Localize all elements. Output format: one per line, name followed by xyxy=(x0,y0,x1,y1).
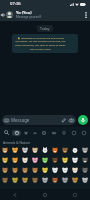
button[interactable]: Emoji category xyxy=(79,127,89,138)
button[interactable]: Emoji xyxy=(70,145,80,155)
button[interactable]: Emoji category xyxy=(69,127,79,138)
button[interactable]: Emoji category xyxy=(12,127,21,138)
button[interactable]: Emoji xyxy=(80,155,90,165)
button[interactable]: Emoji xyxy=(10,145,20,155)
staticText: 07:36 xyxy=(10,1,21,7)
button[interactable]: Emoji xyxy=(60,165,70,175)
button[interactable]: Emoji xyxy=(20,145,30,155)
button[interactable]: Emoji xyxy=(70,165,80,175)
button[interactable]: More options xyxy=(82,8,90,21)
button[interactable]: Emoji xyxy=(80,145,90,155)
button[interactable]: Emoji xyxy=(10,165,20,175)
button[interactable]: Emoji xyxy=(30,145,40,155)
button[interactable]: Emoji xyxy=(50,155,60,165)
button[interactable]: Emoji xyxy=(40,155,50,165)
button[interactable]: Message xyxy=(2,115,76,125)
button[interactable]: Emoji xyxy=(30,175,40,185)
button[interactable]: Emoji xyxy=(0,175,10,185)
button[interactable]: Emoji xyxy=(40,175,50,185)
button[interactable]: Emoji xyxy=(50,145,60,155)
button[interactable]: Voice message xyxy=(78,115,88,125)
button[interactable]: Emoji category xyxy=(49,127,59,138)
button[interactable]: Emoji xyxy=(30,165,40,175)
button[interactable]: Emoji category xyxy=(59,127,69,138)
button[interactable]: Recents xyxy=(60,189,90,200)
staticText: 🔒 Messages to yourself are end-to-end en… xyxy=(15,36,66,51)
button[interactable]: Search emoji xyxy=(0,127,12,138)
staticText: Today xyxy=(40,26,50,31)
button[interactable]: Emoji xyxy=(20,175,30,185)
button[interactable]: Emoji xyxy=(30,155,40,165)
button[interactable]: Emoji xyxy=(0,155,10,165)
button[interactable]: Emoji xyxy=(50,165,60,175)
button[interactable]: Emoji xyxy=(60,175,70,185)
button[interactable]: 🔒 Messages to yourself are end-to-end en… xyxy=(12,34,78,53)
button[interactable]: Emoji xyxy=(70,155,80,165)
button[interactable]: Emoji xyxy=(80,175,90,185)
button[interactable]: Emoji xyxy=(20,155,30,165)
button[interactable]: Emoji category xyxy=(39,127,49,138)
staticText: Animals & Nature xyxy=(3,140,31,144)
button[interactable]: Emoji category xyxy=(21,127,30,138)
button[interactable]: Emoji xyxy=(60,145,70,155)
button[interactable]: Emoji xyxy=(40,145,50,155)
staticText: Yo (You) xyxy=(16,10,32,15)
button[interactable]: Emoji xyxy=(80,165,90,175)
button[interactable]: Emoji xyxy=(60,155,70,165)
button[interactable]: Back xyxy=(0,8,6,21)
button[interactable]: Emoji xyxy=(10,175,20,185)
staticText: Message xyxy=(11,117,30,123)
button[interactable]: Emoji xyxy=(40,165,50,175)
staticText: Message yourself xyxy=(16,15,41,19)
button[interactable]: Emoji xyxy=(70,175,80,185)
button[interactable]: Emoji xyxy=(0,145,10,155)
button[interactable]: Emoji category xyxy=(30,127,39,138)
button[interactable]: Back xyxy=(0,189,30,200)
button[interactable]: Emoji xyxy=(20,165,30,175)
button[interactable]: Home xyxy=(30,189,60,200)
button[interactable]: Emoji xyxy=(0,165,10,175)
button[interactable]: Emoji xyxy=(50,175,60,185)
button[interactable]: Emoji xyxy=(10,155,20,165)
